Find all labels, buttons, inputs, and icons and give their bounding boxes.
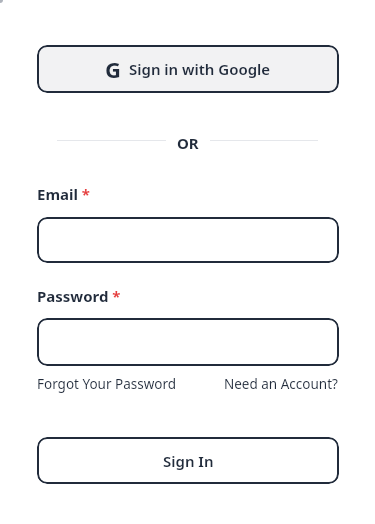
button[interactable]: G xyxy=(37,45,339,93)
button[interactable]: Forgot Your Password xyxy=(37,375,177,393)
button[interactable]: Need an Account? xyxy=(224,375,338,393)
staticText: G xyxy=(105,54,121,84)
button[interactable]: Sign In xyxy=(37,437,339,484)
staticText: OR xyxy=(177,133,199,153)
button[interactable] xyxy=(37,217,339,263)
staticText: Email * xyxy=(37,184,90,204)
button[interactable] xyxy=(37,318,339,366)
staticText: Password * xyxy=(37,286,121,306)
staticText: Sign In xyxy=(163,451,214,471)
staticText: Sign in with Google xyxy=(129,59,271,79)
